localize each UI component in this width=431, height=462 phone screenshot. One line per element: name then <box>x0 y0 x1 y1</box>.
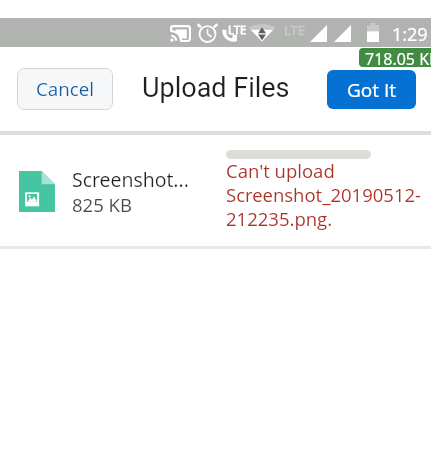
button[interactable]: Cancel <box>17 68 113 110</box>
staticText: 825 KB <box>72 192 132 217</box>
staticText: LTE <box>228 22 247 38</box>
other: Alarm <box>198 23 217 42</box>
other: Cast screen <box>170 25 191 42</box>
other: LTE call <box>222 24 247 42</box>
staticText: Cancel <box>36 76 95 102</box>
other: Wi-Fi activity <box>251 24 273 42</box>
button[interactable]: 718.05 KB <box>359 48 431 67</box>
staticText: Upload Files <box>142 72 290 104</box>
button[interactable]: Screenshot... <box>0 135 431 246</box>
staticText: 718.05 KB <box>365 48 431 67</box>
staticText: 1:29 <box>392 22 428 47</box>
button[interactable]: Got It <box>327 70 416 109</box>
staticText: LTE <box>284 21 305 39</box>
staticText: Screenshot... <box>72 166 217 193</box>
staticText: Can't upload Screenshot_20190512- 212235… <box>226 158 431 231</box>
staticText: Got It <box>347 77 396 103</box>
